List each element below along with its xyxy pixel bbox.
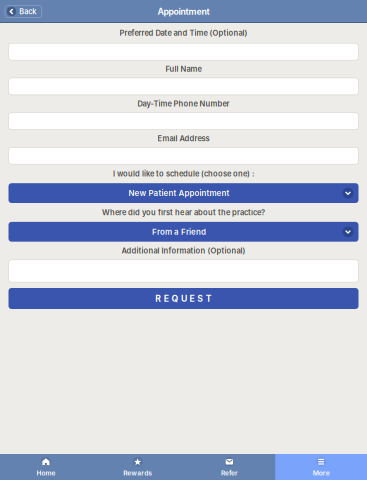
button[interactable]: Rewards <box>92 454 184 480</box>
button[interactable]: From a Friend <box>8 222 358 242</box>
staticText: Appointment <box>157 6 209 17</box>
staticText: Refer <box>221 469 238 477</box>
staticText: Preferred Date and Time (Optional) <box>119 28 247 38</box>
staticText: I would like to schedule (choose one) : <box>113 169 254 178</box>
staticText: From a Friend <box>152 227 206 237</box>
button[interactable]: Home <box>0 454 92 480</box>
staticText: REQUEST <box>155 293 212 304</box>
button[interactable]: REQUEST <box>8 288 358 309</box>
staticText: Additional Information (Optional) <box>121 246 245 255</box>
button[interactable]: New Patient Appointment <box>8 183 358 203</box>
staticText: More <box>313 469 330 477</box>
staticText: Home <box>36 469 55 477</box>
staticText: Email Address <box>157 134 209 143</box>
staticText: Rewards <box>123 469 152 477</box>
staticText: New Patient Appointment <box>128 188 229 198</box>
staticText: Day-Time Phone Number <box>137 99 229 108</box>
staticText: Back <box>19 7 36 16</box>
button[interactable]: More <box>275 454 367 480</box>
button[interactable]: Refer <box>183 454 275 480</box>
staticText: Full Name <box>165 64 201 74</box>
button[interactable]: Back <box>5 5 42 17</box>
staticText: Where did you first hear about the pract… <box>102 208 265 217</box>
